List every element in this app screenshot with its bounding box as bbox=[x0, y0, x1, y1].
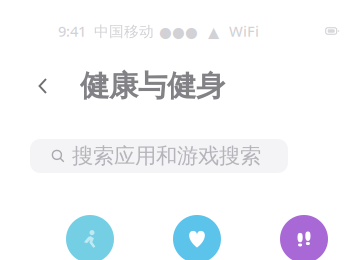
staticText: 搜索应用和游戏搜索 bbox=[72, 143, 261, 169]
button[interactable]: Health bbox=[173, 215, 221, 260]
button[interactable]: Fitness bbox=[66, 215, 114, 260]
staticText: 9:41 中国移动 ●●● ▲ WiFi bbox=[58, 21, 259, 41]
button[interactable]: Back bbox=[30, 71, 56, 101]
button[interactable]: Steps bbox=[280, 215, 328, 260]
staticText: 健康与健身 bbox=[80, 68, 225, 104]
